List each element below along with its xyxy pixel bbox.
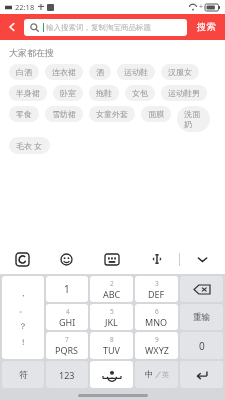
staticText: 123 bbox=[59, 369, 75, 381]
button[interactable]: 8 bbox=[90, 332, 133, 359]
button[interactable]: Delete bbox=[180, 276, 223, 302]
button[interactable]: Enter bbox=[180, 361, 223, 388]
staticText: 汉服女 bbox=[168, 67, 192, 77]
staticText: + bbox=[199, 2, 204, 12]
staticText: DEF bbox=[148, 288, 165, 300]
staticText: 连衣裙 bbox=[52, 67, 76, 77]
staticText: 白酒 bbox=[16, 67, 32, 77]
staticText: 运动鞋男 bbox=[168, 88, 200, 98]
staticText: JKL bbox=[105, 316, 118, 328]
staticText: 22:18 bbox=[15, 2, 35, 12]
staticText: ， bbox=[19, 288, 27, 298]
staticText: 1 bbox=[64, 282, 70, 296]
staticText: GHI bbox=[59, 316, 76, 328]
button[interactable]: 输入搜索词，复制淘宝商品标题 bbox=[24, 19, 187, 36]
button[interactable]: 女包 bbox=[125, 85, 155, 101]
button[interactable]: 搜索 bbox=[187, 14, 225, 40]
staticText: 9 bbox=[155, 335, 159, 344]
button[interactable]: 3 bbox=[135, 276, 178, 302]
staticText: ？ bbox=[19, 321, 27, 331]
staticText: ！ bbox=[19, 337, 27, 347]
staticText: 洗面奶 bbox=[184, 109, 203, 129]
button[interactable]: 6 bbox=[135, 304, 178, 330]
staticText: 零食 bbox=[16, 109, 32, 119]
staticText: 拖鞋 bbox=[96, 88, 112, 98]
button[interactable]: Hide keyboard bbox=[180, 244, 225, 274]
staticText: 面膜 bbox=[148, 109, 164, 119]
staticText: WXYZ bbox=[145, 344, 169, 356]
button[interactable]: 洗面奶 bbox=[177, 106, 210, 132]
button[interactable]: 重输 bbox=[180, 304, 223, 330]
button[interactable]: 酒 bbox=[89, 64, 111, 80]
staticText: 符 bbox=[19, 369, 28, 380]
button[interactable]: 1 bbox=[46, 276, 88, 302]
staticText: 输入搜索词，复制淘宝商品标题 bbox=[46, 23, 151, 32]
button[interactable]: Voice input bbox=[90, 361, 133, 388]
button[interactable]: 7 bbox=[46, 332, 88, 359]
button[interactable]: 符 bbox=[2, 361, 44, 388]
staticText: PQRS bbox=[55, 344, 79, 356]
button[interactable]: Sogou input bbox=[0, 244, 44, 274]
staticText: TUV bbox=[103, 344, 120, 356]
staticText: 2 bbox=[110, 279, 114, 288]
button[interactable]: ， bbox=[2, 276, 44, 359]
button[interactable]: 零食 bbox=[9, 106, 39, 122]
staticText: 搜索 bbox=[197, 21, 216, 33]
button[interactable]: 2 bbox=[90, 276, 133, 302]
button[interactable]: 半身裙 bbox=[9, 85, 47, 101]
button[interactable]: 卧室 bbox=[53, 85, 83, 101]
button[interactable]: 连衣裙 bbox=[45, 64, 83, 80]
button[interactable]: 5 bbox=[90, 304, 133, 330]
button[interactable]: Move cursor bbox=[134, 244, 179, 274]
staticText: 重输 bbox=[193, 312, 210, 323]
button[interactable]: 雪纺裙 bbox=[45, 106, 83, 122]
button[interactable]: 白酒 bbox=[9, 64, 39, 80]
staticText: 女包 bbox=[132, 88, 148, 98]
staticText: 英 bbox=[162, 370, 169, 379]
button[interactable]: 0 bbox=[180, 332, 223, 359]
button[interactable]: 运动鞋男 bbox=[161, 85, 207, 101]
button[interactable]: 123 bbox=[46, 361, 88, 388]
button[interactable]: Emoji bbox=[44, 244, 89, 274]
staticText: 运动鞋 bbox=[124, 67, 148, 77]
button[interactable]: 中 bbox=[135, 361, 178, 388]
staticText: 雪纺裙 bbox=[52, 109, 76, 119]
staticText: 8 bbox=[110, 335, 114, 344]
staticText: 。 bbox=[19, 304, 27, 314]
button[interactable]: 拖鞋 bbox=[89, 85, 119, 101]
staticText: 酒 bbox=[96, 67, 104, 77]
button[interactable]: Keyboard layout bbox=[89, 244, 134, 274]
button[interactable]: 汉服女 bbox=[161, 64, 199, 80]
staticText: 中 bbox=[145, 369, 154, 380]
staticText: ABC bbox=[103, 288, 121, 300]
staticText: 女童外套 bbox=[96, 109, 128, 119]
staticText: 0 bbox=[199, 339, 205, 353]
staticText: 6 bbox=[155, 307, 159, 316]
staticText: MNO bbox=[145, 316, 168, 328]
staticText: 毛衣 女 bbox=[16, 140, 43, 151]
staticText: 3 bbox=[155, 279, 159, 288]
button[interactable]: 面膜 bbox=[141, 106, 171, 122]
staticText: 7 bbox=[65, 335, 69, 344]
button[interactable]: 4 bbox=[46, 304, 88, 330]
staticText: 卧室 bbox=[60, 88, 76, 98]
button[interactable]: 运动鞋 bbox=[117, 64, 155, 80]
button[interactable]: 9 bbox=[135, 332, 178, 359]
button[interactable]: 毛衣 女 bbox=[9, 137, 50, 154]
staticText: 4 bbox=[66, 307, 70, 316]
button[interactable]: Back bbox=[0, 14, 24, 40]
staticText: 5 bbox=[110, 307, 114, 316]
staticText: 大家都在搜 bbox=[9, 47, 54, 58]
button[interactable]: 女童外套 bbox=[89, 106, 135, 122]
staticText: 半身裙 bbox=[16, 88, 40, 98]
